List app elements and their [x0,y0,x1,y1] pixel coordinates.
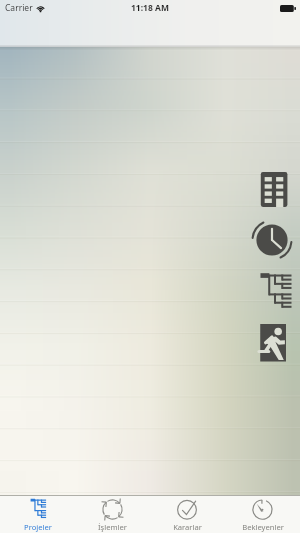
button[interactable]: İşlemler [75,496,150,533]
staticText: 11:18 AM [131,2,169,14]
button[interactable]: Kararlar [150,496,225,533]
staticText: Kararlar [173,522,202,532]
staticText: Bekleyenler [242,522,284,532]
staticText: Carrier [5,2,33,14]
button[interactable]: Organization [258,252,292,300]
button[interactable]: Projeler [0,496,75,533]
button[interactable]: Exit [258,300,292,342]
staticText: Projeler [24,522,52,532]
button[interactable]: Projects [258,168,292,208]
button[interactable]: History [258,208,292,252]
button[interactable]: Bekleyenler [225,496,300,533]
staticText: İşlemler [98,522,127,532]
